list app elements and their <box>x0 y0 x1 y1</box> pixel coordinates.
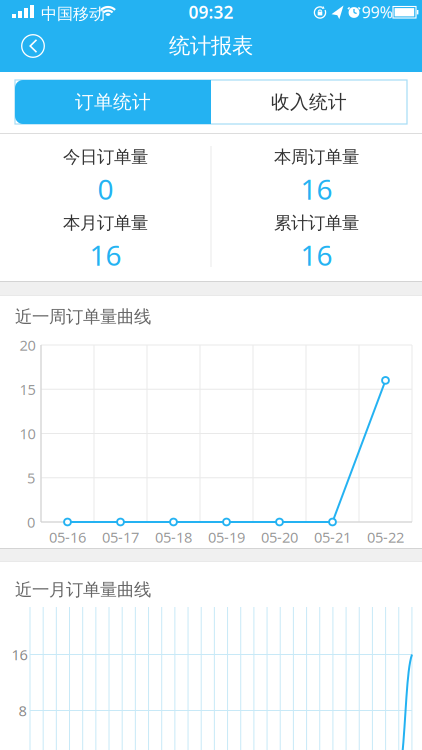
staticText: 订单统计 <box>75 90 151 113</box>
staticText: 05-22 <box>367 527 404 547</box>
staticText: 统计报表 <box>169 33 253 59</box>
staticText: 99% <box>361 1 392 23</box>
staticText: 05-21 <box>314 527 351 547</box>
staticText: 今日订单量 <box>63 146 148 168</box>
staticText: 15 <box>19 379 35 399</box>
staticText: 本月订单量 <box>63 212 148 234</box>
staticText: 16 <box>300 170 332 208</box>
staticText: 8 <box>18 701 26 720</box>
staticText: 05-17 <box>102 527 139 547</box>
staticText: 累计订单量 <box>274 212 359 234</box>
staticText: 10 <box>19 424 35 443</box>
staticText: 20 <box>19 335 35 355</box>
staticText: 本周订单量 <box>274 146 359 168</box>
staticText: 近一月订单量曲线 <box>15 579 151 600</box>
staticText: 05-20 <box>261 527 298 547</box>
staticText: 16 <box>300 236 332 274</box>
staticText: 09:32 <box>188 0 233 23</box>
staticText: 05-18 <box>155 527 192 547</box>
staticText: 05-16 <box>49 527 86 547</box>
staticText: 0 <box>27 512 35 532</box>
staticText: 05-19 <box>208 527 245 547</box>
staticText: 16 <box>11 645 27 664</box>
staticText: 近一周订单量曲线 <box>15 306 151 327</box>
staticText: 中国移动 <box>41 4 105 24</box>
button[interactable]: 收入统计 <box>211 80 407 124</box>
staticText: 收入统计 <box>271 90 347 113</box>
staticText: 5 <box>27 468 35 487</box>
button[interactable]: 订单统计 <box>0 0 422 750</box>
button[interactable]: Back <box>17 30 49 62</box>
staticText: 16 <box>89 236 121 274</box>
staticText: 0 <box>97 170 113 208</box>
